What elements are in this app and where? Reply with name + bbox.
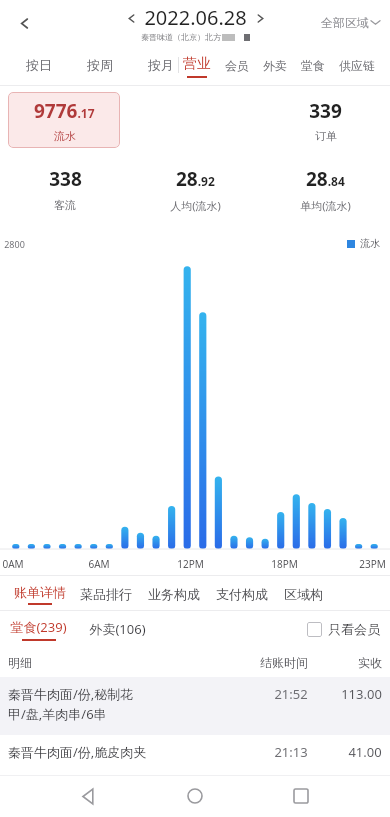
staticText: 堂食(239) xyxy=(10,618,67,636)
staticText: 按日 xyxy=(26,57,52,73)
staticText: 全部区域 xyxy=(321,15,369,30)
staticText: 单均(流水) xyxy=(300,198,351,213)
button[interactable]: 只看会员 xyxy=(307,621,380,637)
button[interactable]: 338 xyxy=(0,166,130,212)
staticText: 只看会员 xyxy=(328,621,380,637)
button[interactable]: Home xyxy=(168,775,222,817)
button[interactable]: Next day xyxy=(247,5,273,31)
staticText: 秦晋味道（北京）北方 xyxy=(141,32,221,42)
staticText: 外卖(106) xyxy=(89,620,146,638)
staticText: 菜品排行 xyxy=(80,586,132,602)
button[interactable]: Back xyxy=(6,5,42,41)
staticText: 秦晋牛肉面/份,脆皮肉夹 xyxy=(8,743,147,761)
staticText: 338 xyxy=(49,166,82,192)
staticText: 人均(流水) xyxy=(170,198,221,213)
staticText: 外卖 xyxy=(263,58,287,73)
button[interactable]: 供应链 xyxy=(332,49,382,82)
staticText: 9776.17 xyxy=(34,98,95,124)
staticText: 流水 xyxy=(54,129,76,143)
button[interactable]: 339 xyxy=(260,92,390,148)
staticText: 113.00 xyxy=(341,685,382,703)
button[interactable]: 秦晋牛肉面/份,脆皮肉夹 xyxy=(0,735,390,775)
staticText: 28.84 xyxy=(306,166,345,192)
button[interactable]: Previous day xyxy=(118,5,144,31)
button[interactable]: 区域构 xyxy=(276,578,331,610)
button[interactable]: 28.84 xyxy=(260,166,390,213)
button[interactable]: 按日 xyxy=(14,49,64,81)
staticText: 2022.06.28 xyxy=(144,4,247,31)
staticText: 21:52 xyxy=(274,685,308,703)
button[interactable]: 营业 xyxy=(176,55,218,82)
staticText: 会员 xyxy=(225,58,249,73)
staticText: 339 xyxy=(309,98,342,124)
button[interactable]: 账单详情 xyxy=(8,584,72,610)
button[interactable]: 按周 xyxy=(75,49,125,81)
button[interactable]: 秦晋牛肉面/份,秘制花 甲/盘,羊肉串/6串 xyxy=(0,677,390,735)
staticText: 支付构成 xyxy=(216,586,268,602)
staticText: 流水 xyxy=(360,237,380,250)
button[interactable]: 菜品排行 xyxy=(72,578,140,610)
button[interactable]: 业务构成 xyxy=(140,578,208,610)
staticText: 2800 xyxy=(4,238,25,250)
staticText: 业务构成 xyxy=(148,586,200,602)
button[interactable]: 堂食 xyxy=(294,49,332,82)
button[interactable]: 按月 xyxy=(136,49,186,81)
button[interactable]: 会员 xyxy=(218,49,256,82)
staticText: 6AM xyxy=(88,557,110,571)
staticText: 供应链 xyxy=(339,58,375,73)
staticText: 18PM xyxy=(271,557,298,571)
staticText: 账单详情 xyxy=(14,584,66,600)
button[interactable]: 支付构成 xyxy=(208,578,276,610)
button[interactable]: 外卖 xyxy=(256,49,294,82)
button[interactable]: 全部区域 xyxy=(317,9,384,36)
button[interactable]: 28.92 xyxy=(130,166,260,213)
staticText: 营业 xyxy=(183,55,211,73)
staticText: 0AM xyxy=(2,557,24,571)
staticText: 明细 xyxy=(8,655,32,670)
button[interactable]: Back xyxy=(62,775,116,817)
staticText: 23PM xyxy=(359,557,386,571)
staticText: 按月 xyxy=(148,57,174,73)
staticText: 41.00 xyxy=(348,743,382,761)
button[interactable]: Recents xyxy=(274,775,328,817)
staticText: 区域构 xyxy=(284,586,323,602)
staticText: 堂食 xyxy=(301,58,325,73)
staticText: 结账时间 xyxy=(260,655,308,670)
staticText: 按周 xyxy=(87,57,113,73)
staticText: 客流 xyxy=(54,198,76,212)
staticText: 实收 xyxy=(358,655,382,670)
staticText: 21:13 xyxy=(274,743,308,761)
staticText: 秦晋牛肉面/份,秘制花 甲/盘,羊肉串/6串 xyxy=(8,685,134,723)
staticText: 订单 xyxy=(315,129,337,143)
button[interactable]: 堂食(239) xyxy=(6,618,71,641)
staticText: 28.92 xyxy=(176,166,215,192)
button[interactable]: 外卖(106) xyxy=(85,617,150,641)
button[interactable]: 9776.17 xyxy=(8,92,120,148)
staticText: 12PM xyxy=(177,557,204,571)
